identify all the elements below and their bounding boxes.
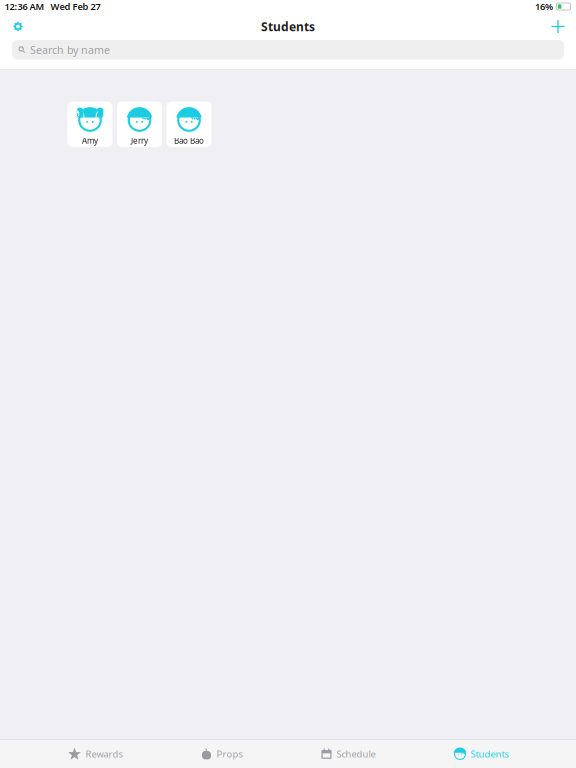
button[interactable]: Props — [200, 740, 242, 768]
staticText: Jerry — [131, 135, 148, 146]
staticText: Amy — [82, 135, 98, 146]
button[interactable]: Rewards — [67, 740, 122, 768]
staticText: Search by name — [30, 43, 110, 57]
staticText: Rewards — [85, 748, 122, 760]
staticText: Students — [261, 18, 315, 34]
staticText: Wed Feb 27 — [50, 0, 100, 13]
button[interactable]: Add — [548, 16, 568, 36]
button[interactable]: Bao Bao — [166, 101, 211, 147]
button[interactable]: Schedule — [320, 740, 375, 768]
staticText: Props — [216, 748, 242, 760]
button[interactable]: Amy — [67, 101, 112, 147]
button[interactable]: Jerry — [117, 101, 162, 147]
staticText: Schedule — [336, 748, 375, 760]
staticText: Students — [470, 748, 508, 760]
button[interactable]: Settings — [8, 16, 28, 36]
staticText: 12:36 AM — [4, 0, 44, 13]
button[interactable]: Students — [453, 740, 508, 768]
staticText: Bao Bao — [174, 135, 204, 146]
staticText: 16% — [535, 0, 553, 13]
